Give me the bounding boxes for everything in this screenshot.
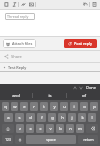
button[interactable]: Shift xyxy=(2,124,14,133)
staticText: f xyxy=(41,115,43,121)
button[interactable]: of xyxy=(67,91,100,100)
button[interactable]: w xyxy=(11,102,18,111)
button[interactable]: e xyxy=(20,102,28,111)
staticText: Post reply xyxy=(74,41,93,46)
staticText: and xyxy=(12,93,20,99)
button[interactable]: n xyxy=(66,124,74,133)
staticText: o xyxy=(83,104,86,110)
button[interactable]: Post reply xyxy=(64,39,97,48)
button[interactable]: Test Reply xyxy=(0,63,100,71)
button[interactable]: u xyxy=(60,102,68,111)
button[interactable]: Bold xyxy=(2,0,10,9)
button[interactable]: is xyxy=(33,91,66,100)
button[interactable]: Done xyxy=(85,84,98,91)
button[interactable]: return xyxy=(78,135,98,144)
staticText: Share xyxy=(11,54,22,59)
button[interactable]: r xyxy=(30,102,38,111)
staticText: h xyxy=(61,115,64,121)
button[interactable]: s xyxy=(15,113,24,122)
button[interactable]: a xyxy=(4,113,13,122)
staticText: i xyxy=(73,104,75,110)
staticText: u xyxy=(63,104,66,110)
button[interactable]: p xyxy=(90,102,98,111)
button[interactable]: d xyxy=(26,113,35,122)
button[interactable]: Previous field xyxy=(72,85,78,91)
staticText: Test Reply xyxy=(8,65,27,70)
staticText: b xyxy=(59,126,62,132)
button[interactable]: h xyxy=(58,113,66,122)
button[interactable]: Share xyxy=(0,51,100,62)
button[interactable]: Backspace xyxy=(86,124,98,133)
staticText: x xyxy=(29,126,32,132)
button[interactable]: j xyxy=(68,113,76,122)
staticText: j xyxy=(71,115,73,121)
staticText: e xyxy=(23,104,26,110)
button[interactable]: 123 xyxy=(2,135,13,144)
staticText: Done xyxy=(86,85,97,90)
staticText: m xyxy=(78,126,82,132)
staticText: s xyxy=(18,115,21,121)
button[interactable]: Attach files xyxy=(3,39,36,48)
staticText: Thread reply xyxy=(7,14,29,19)
button[interactable]: i xyxy=(70,102,78,111)
button[interactable]: Insert image xyxy=(27,0,35,9)
button[interactable]: Italic xyxy=(10,0,18,9)
staticText: return xyxy=(83,137,94,142)
staticText: n xyxy=(69,126,72,132)
button[interactable]: x xyxy=(26,124,34,133)
staticText: d xyxy=(29,115,32,121)
button[interactable]: o xyxy=(80,102,88,111)
staticText: g xyxy=(51,115,54,121)
staticText: v xyxy=(49,126,52,132)
button[interactable]: m xyxy=(76,124,84,133)
staticText: r xyxy=(33,104,35,110)
button[interactable]: v xyxy=(46,124,54,133)
button[interactable]: g xyxy=(48,113,56,122)
staticText: z xyxy=(19,126,21,132)
staticText: of xyxy=(82,93,86,99)
staticText: a xyxy=(7,115,10,121)
staticText: w xyxy=(13,104,17,110)
button[interactable]: z xyxy=(16,124,24,133)
staticText: q xyxy=(4,104,7,110)
button[interactable]: Next field xyxy=(78,85,84,91)
button[interactable]: Thread reply xyxy=(0,10,100,36)
button[interactable]: l xyxy=(88,113,96,122)
button[interactable]: Undo xyxy=(81,0,89,9)
button[interactable]: k xyxy=(78,113,86,122)
button[interactable]: Link xyxy=(19,0,27,9)
staticText: c xyxy=(39,126,42,132)
button[interactable]: f xyxy=(37,113,46,122)
staticText: l xyxy=(91,115,93,121)
button[interactable]: space xyxy=(26,135,76,144)
staticText: p xyxy=(93,104,96,110)
staticText: Attach files xyxy=(12,41,33,46)
button[interactable]: More options xyxy=(90,0,98,9)
button[interactable]: q xyxy=(2,102,9,111)
button[interactable]: c xyxy=(36,124,44,133)
button[interactable]: and xyxy=(0,91,32,100)
button[interactable]: y xyxy=(50,102,58,111)
staticText: space xyxy=(46,137,56,142)
button[interactable]: t xyxy=(40,102,48,111)
button[interactable]: Voice input xyxy=(15,135,24,144)
button[interactable]: b xyxy=(56,124,64,133)
staticText: 123 xyxy=(5,138,11,142)
staticText: y xyxy=(53,104,56,110)
staticText: is xyxy=(48,93,52,99)
staticText: k xyxy=(81,115,84,121)
staticText: t xyxy=(43,104,45,110)
